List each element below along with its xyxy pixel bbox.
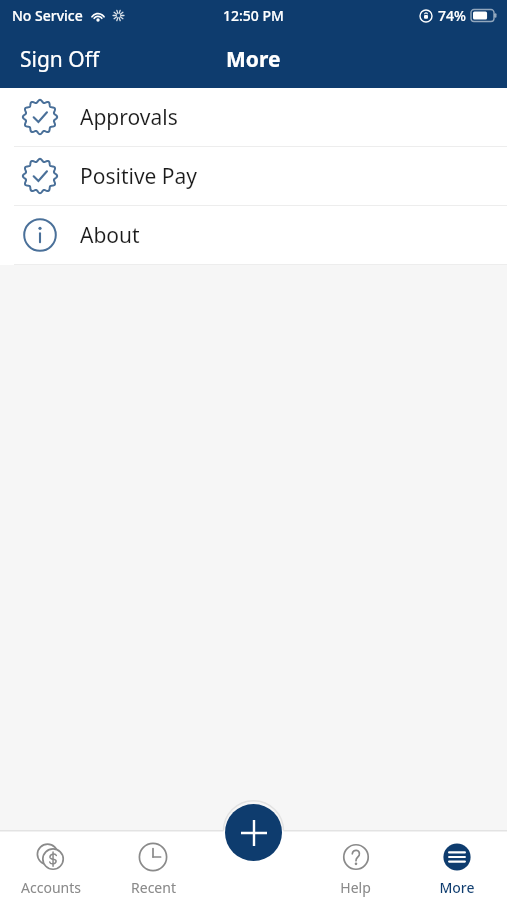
button[interactable]: Recent bbox=[102, 830, 204, 900]
button[interactable]: About bbox=[0, 206, 507, 264]
staticText: More bbox=[439, 878, 475, 897]
staticText: More bbox=[226, 45, 281, 74]
button[interactable]: Help bbox=[305, 830, 406, 900]
staticText: 12:50 PM bbox=[223, 6, 284, 25]
staticText: Recent bbox=[131, 878, 176, 897]
staticText: Positive Pay bbox=[80, 162, 198, 191]
staticText: No Service bbox=[12, 6, 83, 25]
staticText: About bbox=[80, 221, 140, 250]
staticText: Accounts bbox=[21, 878, 81, 897]
button[interactable]: Sign Off bbox=[0, 35, 120, 84]
button[interactable]: Accounts bbox=[0, 830, 102, 900]
button[interactable]: Positive Pay bbox=[0, 147, 507, 205]
button[interactable]: Approvals bbox=[0, 88, 507, 146]
staticText: Help bbox=[340, 878, 371, 897]
button[interactable]: Add bbox=[225, 804, 282, 861]
staticText: 74% bbox=[438, 6, 466, 25]
staticText: Approvals bbox=[80, 103, 178, 132]
staticText: Sign Off bbox=[20, 45, 100, 74]
button[interactable]: More bbox=[406, 830, 507, 900]
